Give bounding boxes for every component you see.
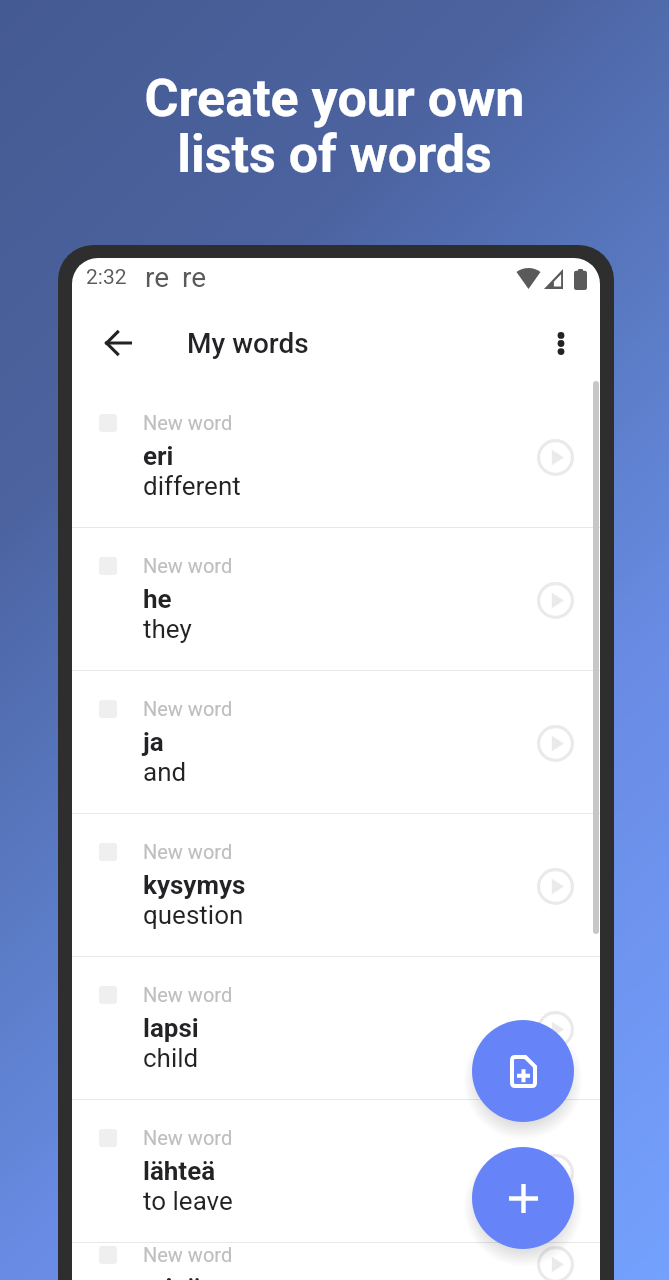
staticText: eri [143,441,174,471]
button[interactable]: Play pronunciation [528,859,582,913]
button[interactable]: New word [72,671,600,814]
staticText: different [143,471,241,501]
button[interactable]: Play pronunciation [528,1244,582,1280]
button[interactable]: New word [72,528,600,671]
staticText: New word [143,697,233,720]
staticText: lähteä [143,1156,216,1186]
staticText: New word [143,983,233,1006]
staticText: child [143,1043,199,1073]
staticText: lapsi [143,1013,199,1043]
staticText: they [143,614,192,644]
button[interactable]: Play pronunciation [528,1002,582,1056]
staticText: My words [187,327,309,360]
button[interactable]: Play pronunciation [528,716,582,770]
button[interactable]: New word [72,957,600,1100]
button[interactable]: New word [72,814,600,957]
staticText: question [143,900,244,930]
staticText: ja [143,727,164,757]
staticText: New word [143,1243,233,1266]
button[interactable]: Play pronunciation [528,1145,582,1199]
staticText: re [145,261,170,294]
staticText: kysymys [143,870,246,900]
staticText: minä [143,1273,201,1280]
staticText: New word [143,411,233,434]
button[interactable]: Play pronunciation [528,573,582,627]
staticText: New word [143,1126,233,1149]
staticText: Create your own lists of words [144,68,525,185]
button[interactable]: Navigate up [82,307,154,379]
staticText: and [143,757,187,787]
staticText: to leave [143,1186,233,1216]
button[interactable]: Play pronunciation [528,430,582,484]
button[interactable]: New word [72,1100,600,1243]
button[interactable]: Import word list [472,1020,574,1122]
staticText: re [182,261,207,294]
staticText: he [143,584,172,614]
button[interactable]: More options [525,307,597,379]
staticText: 2:32 [86,265,127,290]
button[interactable]: New word [72,385,600,528]
button[interactable]: Add word [472,1147,574,1249]
staticText: New word [143,554,233,577]
button[interactable]: New word [72,1243,600,1280]
staticText: New word [143,840,233,863]
